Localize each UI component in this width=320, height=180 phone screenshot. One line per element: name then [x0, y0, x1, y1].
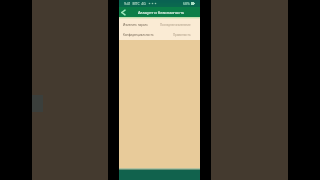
staticText: 68% — [183, 1, 190, 6]
staticText: Приватность — [173, 33, 191, 37]
staticText: Изменить пароль — [123, 23, 148, 27]
button[interactable]: Изменить пароль — [119, 20, 200, 30]
button[interactable]: Back — [119, 8, 128, 17]
staticText: Конфиденциальность — [123, 33, 154, 37]
staticText: Последнее изменение — [160, 23, 191, 27]
staticText: 9:41 МТС 4G — [124, 1, 146, 6]
button[interactable]: Конфиденциальность — [119, 30, 200, 40]
staticText: Аккаунт и безопасность — [138, 10, 185, 15]
